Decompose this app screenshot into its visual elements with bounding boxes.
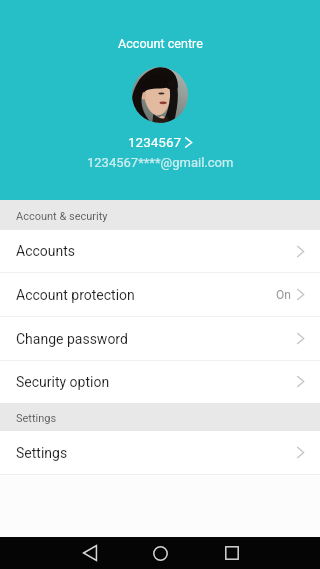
staticText: 1234567 <box>128 134 182 150</box>
button[interactable]: Accounts <box>0 230 320 273</box>
staticText: Settings <box>16 412 57 425</box>
staticText: Account protection <box>16 287 135 303</box>
staticText: Account centre <box>118 36 203 51</box>
staticText: On <box>276 288 291 302</box>
button[interactable]: Change password <box>0 317 320 361</box>
button[interactable]: Back <box>58 537 122 569</box>
staticText: 1234567****@gmail.com <box>87 155 234 170</box>
button[interactable]: Account protection <box>0 273 320 317</box>
button[interactable]: Profile photo <box>132 67 188 123</box>
button[interactable]: Settings <box>0 431 320 475</box>
button[interactable]: Security option <box>0 361 320 403</box>
staticText: Accounts <box>16 243 76 259</box>
staticText: Settings <box>16 445 68 461</box>
staticText: Change password <box>16 331 128 347</box>
staticText: Account & security <box>16 210 108 223</box>
button[interactable]: Recents <box>200 537 264 569</box>
staticText: Security option <box>16 374 110 390</box>
button[interactable]: Home <box>128 537 192 569</box>
